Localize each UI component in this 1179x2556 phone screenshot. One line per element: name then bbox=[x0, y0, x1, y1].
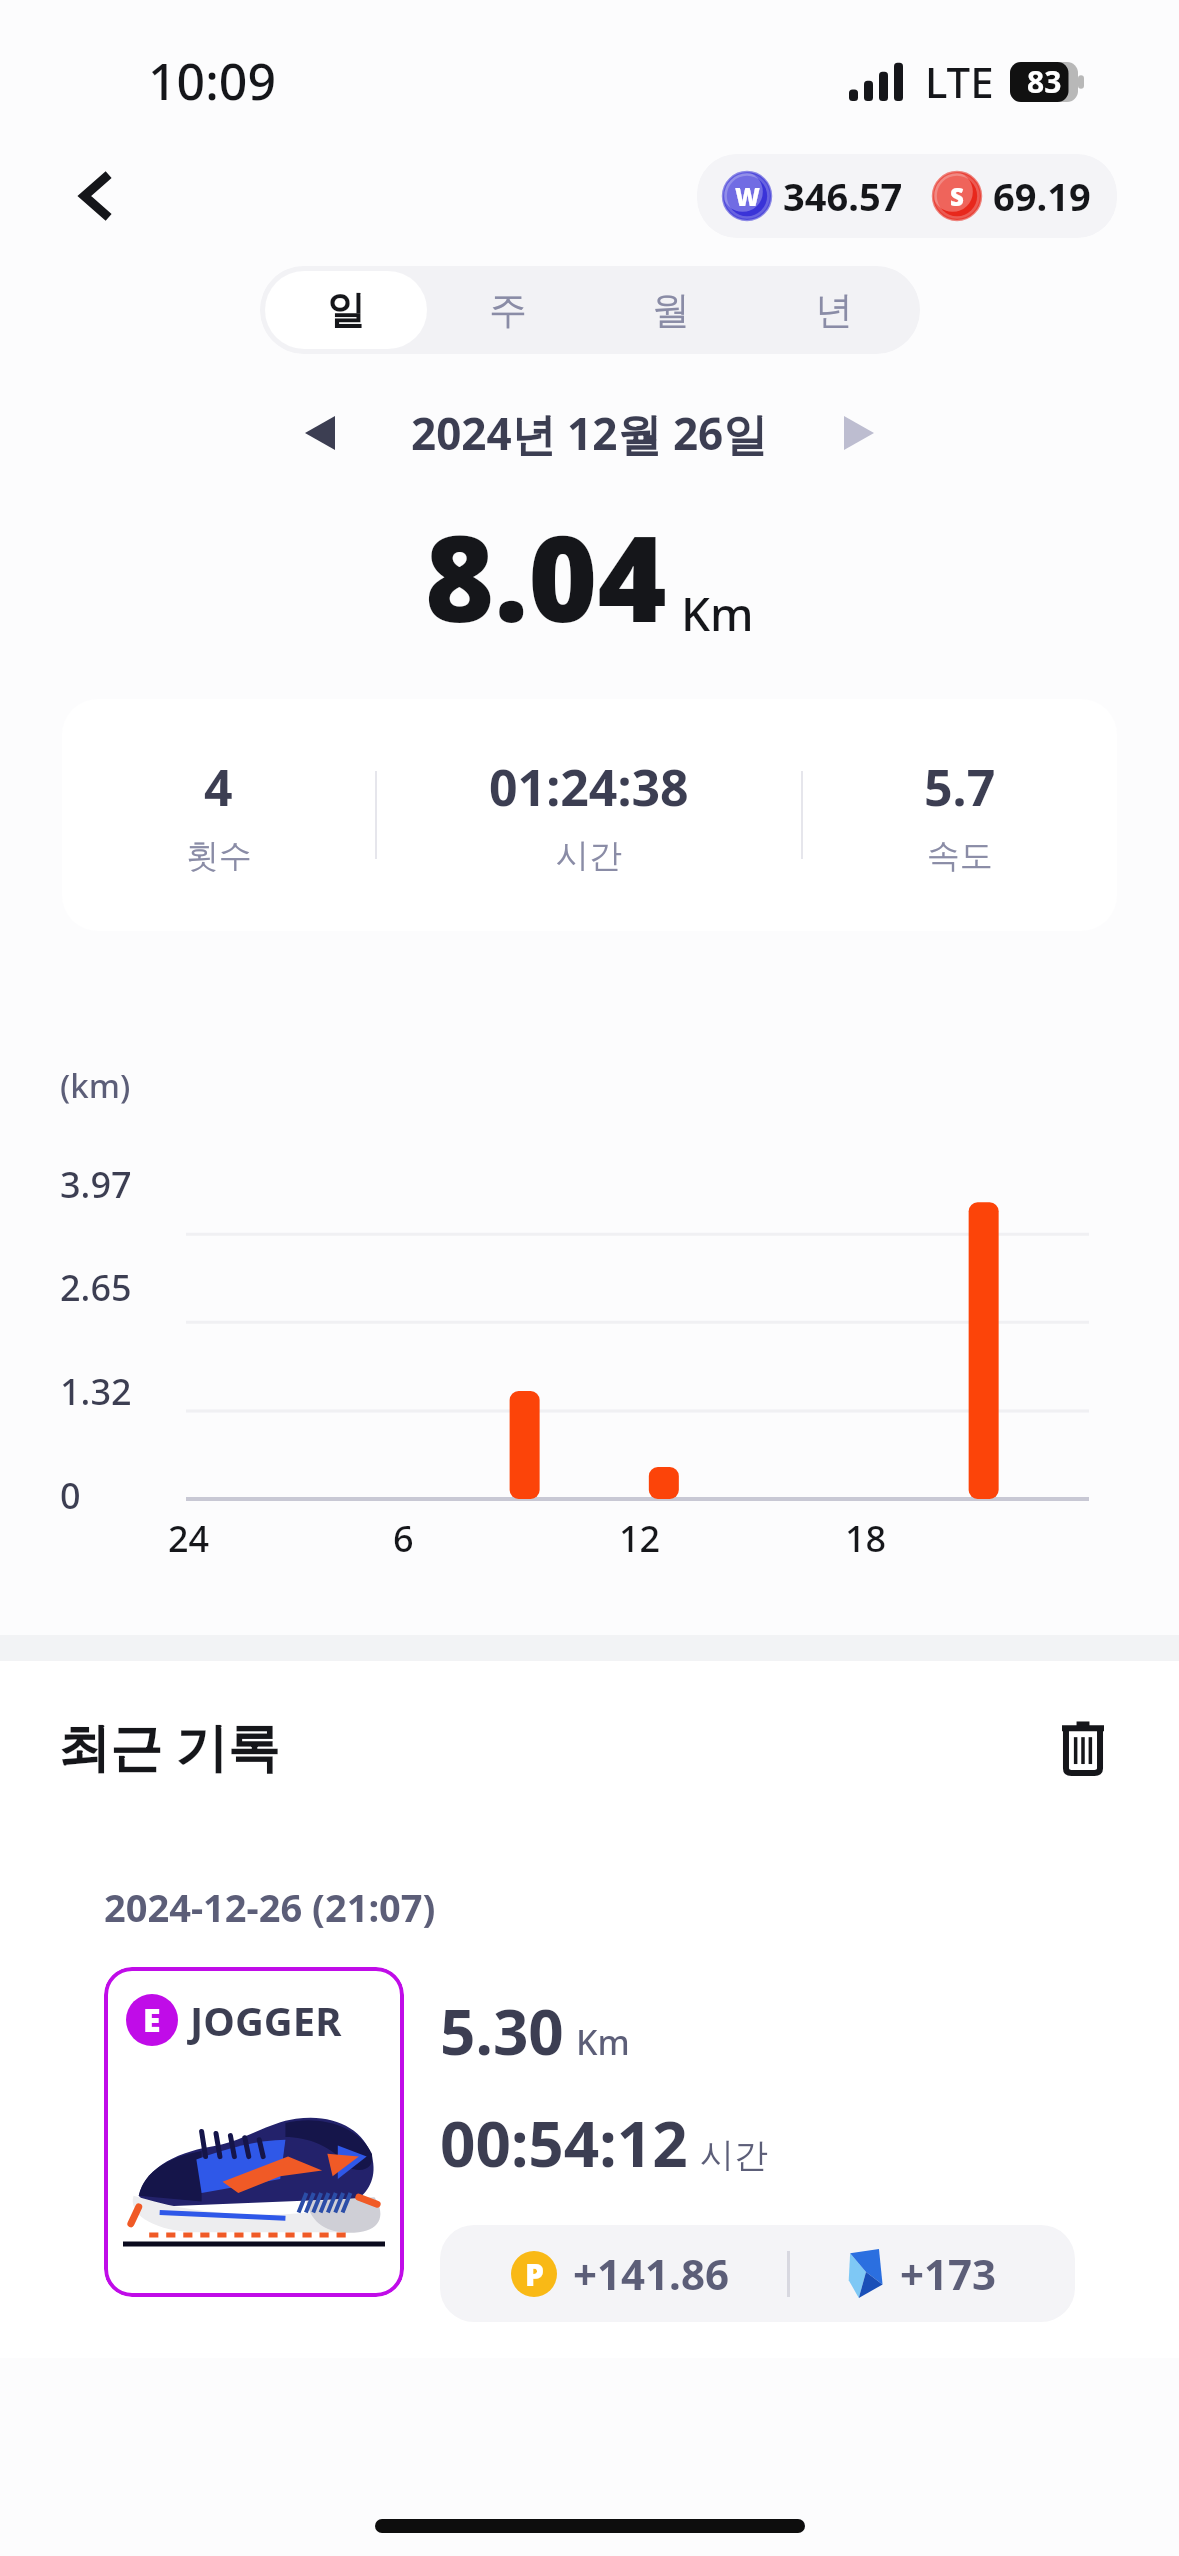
button[interactable]: 월 bbox=[589, 271, 752, 349]
button[interactable]: 일 bbox=[265, 271, 427, 349]
staticText: 월 bbox=[652, 286, 690, 334]
staticText: Km bbox=[576, 2019, 630, 2065]
staticText: 시간 bbox=[700, 2134, 768, 2177]
staticText: 년 bbox=[815, 286, 853, 334]
staticText: 01:24:38 bbox=[489, 753, 689, 821]
staticText: Km bbox=[681, 582, 754, 645]
staticText: E bbox=[143, 1998, 161, 2042]
staticText: 4 bbox=[204, 753, 233, 821]
staticText: 주 bbox=[489, 286, 527, 334]
button[interactable]: Next day bbox=[824, 398, 894, 468]
button[interactable]: Delete records bbox=[1045, 1707, 1121, 1783]
staticText: 1.32 bbox=[60, 1367, 170, 1416]
staticText: 최근 기록 bbox=[58, 1710, 280, 1781]
staticText: 횟수 bbox=[186, 835, 252, 877]
staticText: 2024-12-26 (21:07) bbox=[104, 1881, 436, 1933]
staticText: LTE bbox=[925, 53, 994, 110]
staticText: 3.97 bbox=[60, 1160, 170, 1209]
staticText: 일 bbox=[327, 286, 365, 334]
staticText: 69.19 bbox=[993, 170, 1091, 222]
staticText: S bbox=[950, 180, 964, 213]
staticText: (km) bbox=[60, 1063, 131, 1108]
staticText: 8.04 bbox=[425, 496, 667, 657]
staticText: 속도 bbox=[927, 835, 993, 877]
staticText: 10:09 bbox=[148, 47, 276, 115]
button[interactable]: 년 bbox=[752, 271, 915, 349]
staticText: 0 bbox=[60, 1471, 170, 1520]
button[interactable]: W bbox=[697, 154, 1117, 238]
staticText: 시간 bbox=[556, 835, 622, 877]
staticText: 5.30 bbox=[440, 1989, 564, 2073]
staticText: +173 bbox=[900, 2245, 997, 2302]
staticText: 12 bbox=[619, 1514, 661, 1563]
staticText: W bbox=[735, 180, 760, 213]
staticText: 6 bbox=[393, 1514, 414, 1563]
staticText: 24 bbox=[168, 1514, 210, 1563]
button[interactable]: 주 bbox=[427, 271, 589, 349]
button[interactable]: Previous day bbox=[285, 398, 355, 468]
staticText: JOGGER bbox=[190, 1993, 342, 2047]
staticText: 83 bbox=[1027, 61, 1062, 102]
staticText: 2.65 bbox=[60, 1263, 170, 1312]
button[interactable]: P bbox=[440, 2225, 1075, 2322]
button[interactable]: 4 bbox=[62, 699, 1117, 931]
staticText: +141.86 bbox=[573, 2245, 729, 2302]
button[interactable]: 2024-12-26 (21:07) bbox=[62, 1845, 1117, 2358]
staticText: 00:54:12 bbox=[440, 2101, 688, 2185]
staticText: 5.7 bbox=[924, 753, 996, 821]
staticText: 18 bbox=[845, 1514, 887, 1563]
staticText: P bbox=[525, 2254, 544, 2295]
staticText: 346.57 bbox=[783, 170, 903, 222]
button[interactable]: Back bbox=[58, 158, 134, 234]
staticText: 2024년 12월 26일 bbox=[411, 403, 768, 463]
button[interactable]: E bbox=[104, 1967, 404, 2297]
